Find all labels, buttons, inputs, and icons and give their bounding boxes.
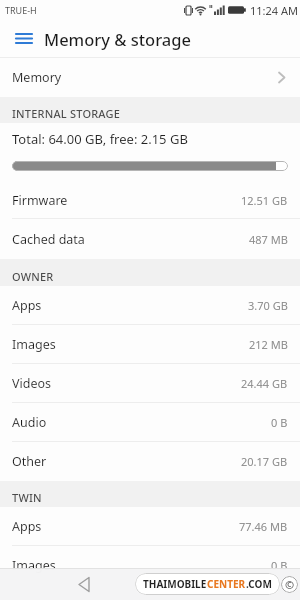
staticText: Total: 64.00 GB, free: 2.15 GB (12, 130, 188, 148)
staticText: 0 B (271, 415, 288, 430)
button[interactable] (0, 20, 44, 57)
staticText: 3.70 GB (248, 298, 288, 313)
staticText: TRUE-H (5, 4, 37, 16)
staticText: 12.51 GB (241, 193, 288, 208)
staticText: 11:24 AM (250, 3, 298, 18)
staticText: Cached data (12, 231, 85, 248)
button[interactable]: Apps (0, 507, 300, 546)
staticText: 212 MB (249, 337, 288, 352)
staticText: Apps (12, 518, 42, 535)
staticText: Videos (12, 375, 52, 392)
staticText: 24.44 GB (241, 376, 288, 391)
staticText: Memory (12, 69, 62, 86)
staticText: Other (12, 453, 47, 470)
staticText: .COM (246, 577, 272, 591)
staticText: Audio (12, 414, 47, 431)
staticText: 487 MB (249, 232, 288, 247)
staticText: TWIN (12, 490, 42, 505)
button[interactable]: Videos (0, 364, 300, 403)
staticText: THAIMOBILE (143, 577, 207, 591)
button[interactable]: Images (0, 325, 300, 364)
staticText: Images (12, 557, 56, 574)
staticText: 0 B (271, 558, 288, 573)
button[interactable] (70, 570, 98, 598)
button[interactable]: Apps (0, 286, 300, 325)
button[interactable]: Audio (0, 403, 300, 442)
staticText: OWNER (12, 269, 54, 284)
button[interactable]: Firmware (0, 181, 300, 219)
staticText: Apps (12, 297, 42, 314)
button[interactable]: Cached data (0, 219, 300, 259)
button[interactable]: Other (0, 442, 300, 481)
staticText: Firmware (12, 192, 68, 209)
button[interactable]: THAIMOBILE (143, 577, 272, 591)
staticText: CENTER (207, 577, 246, 591)
staticText: INTERNAL STORAGE (12, 106, 121, 121)
staticText: Images (12, 336, 56, 353)
staticText: © (285, 577, 295, 592)
staticText: Memory & storage (44, 28, 191, 50)
staticText: 20.17 GB (241, 454, 288, 469)
button[interactable]: Images (0, 546, 300, 585)
staticText: 77.46 MB (239, 519, 288, 534)
button[interactable]: Memory (0, 58, 300, 97)
